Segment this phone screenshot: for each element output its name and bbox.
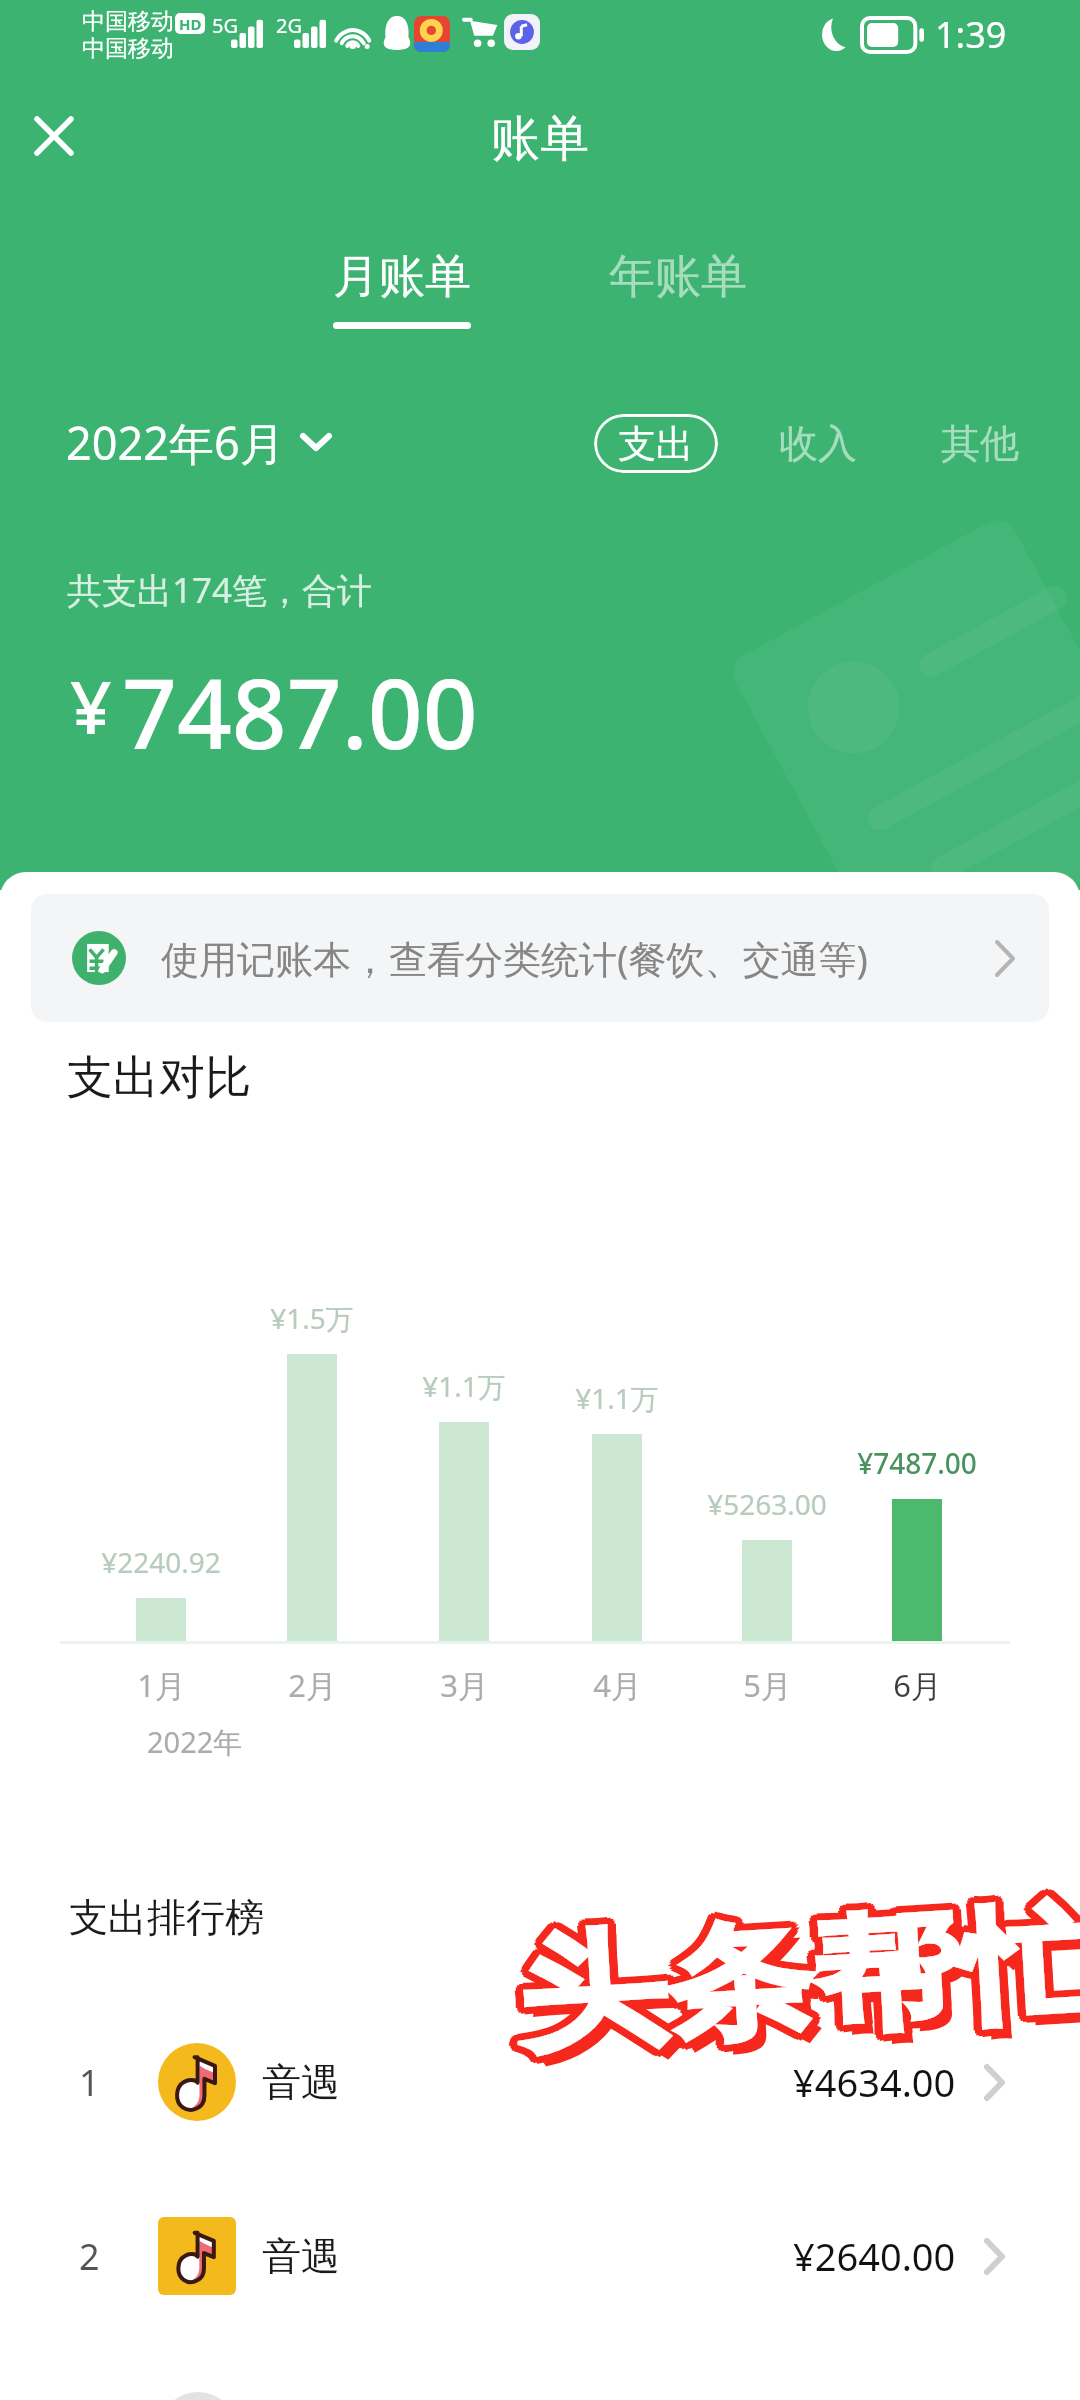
staticText: 4月 [593,1664,642,1706]
staticText: 头条帮忙 [521,1887,1080,2079]
staticText: 共支出174笔，合计 [67,566,373,614]
button[interactable]: 收入 [758,414,878,473]
staticText: 头条帮忙 [522,1883,1080,2076]
staticText: ¥1.5万 [270,1299,354,1337]
staticText: ¥2240.92 [101,1543,221,1581]
staticText: 音遇 [262,2058,340,2107]
staticText: 头条帮忙 [510,1878,1080,2071]
button[interactable]: 支出 [594,414,718,473]
button[interactable]: Close [22,104,86,168]
staticText: 头条帮忙 [521,1880,1080,2073]
staticText: ¥4634.00 [793,2056,956,2108]
staticText: 支出排行榜 [69,1893,264,1942]
staticText: 2022年 [147,1722,243,1762]
staticText: 2月 [288,1664,337,1706]
staticText: 2 [79,2232,100,2281]
staticText: 3月 [440,1664,489,1706]
staticText: 2G [276,12,302,39]
staticText: 头条帮忙 [514,1891,1080,2084]
staticText: 头条帮忙 [517,1878,1080,2070]
staticText: ¥1.1万 [575,1379,659,1417]
staticText: ¥ [70,656,112,755]
button[interactable]: 月账单 [292,230,512,350]
staticText: 1月 [137,1664,186,1706]
button[interactable]: 年账单 [568,230,788,330]
staticText: 7487.00 [122,646,478,777]
staticText: 5月 [743,1664,792,1706]
staticText: 使用记账本，查看分类统计(餐饮、交通等) [161,932,868,984]
staticText: ¥7487.00 [857,1444,977,1482]
staticText: HD [179,14,202,34]
staticText: 中国移动 [82,7,174,36]
staticText: 头条帮忙 [508,1879,1080,2072]
staticText: 头条帮忙 [507,1887,1080,2080]
staticText: 头条帮忙 [514,1884,1080,2077]
staticText: 支出 [618,420,694,468]
staticText: 音遇 [262,2232,340,2281]
staticText: 6月 [893,1664,942,1706]
staticText: 2022年6月 [66,412,285,473]
staticText: 其他 [941,419,1019,468]
staticText: 头条帮忙 [505,1884,1080,2077]
staticText: 1:39 [935,10,1007,59]
staticText: 头条帮忙 [523,1894,1080,2086]
staticText: 头条帮忙 [507,1881,1080,2074]
button[interactable]: 2022年6月 [54,396,343,488]
staticText: 支出对比 [67,1049,251,1107]
staticText: 头条帮忙 [518,1890,1080,2083]
button[interactable]: 1 [0,2006,1080,2158]
staticText: ¥5263.00 [707,1485,827,1523]
staticText: 1 [79,2058,100,2107]
staticText: 头条帮忙 [520,1889,1080,2081]
staticText: 账单 [491,108,589,170]
staticText: ¥2640.00 [793,2230,956,2282]
button[interactable]: 使用记账本，查看分类统计(餐饮、交通等) [31,894,1049,1022]
staticText: 5G [212,12,238,39]
staticText: 收入 [779,419,857,468]
staticText: 头条帮忙 [520,1878,1080,2071]
staticText: 中国移动 [82,34,174,63]
staticText: ¥1.1万 [422,1367,506,1405]
staticText: 头条帮忙 [514,1877,1080,2070]
button[interactable]: 其他 [920,414,1040,473]
staticText: 月账单 [333,248,471,306]
staticText: 头条帮忙 [508,1889,1080,2082]
staticText: 头条帮忙 [511,1890,1080,2083]
staticText: 年账单 [609,248,747,306]
button[interactable]: 2 [0,2180,1080,2332]
